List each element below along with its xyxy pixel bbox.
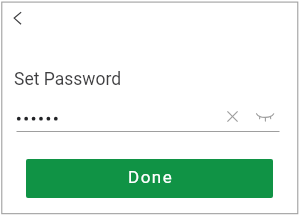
button[interactable]: Done (26, 159, 273, 198)
button[interactable]: Clear password (221, 105, 244, 128)
staticText: Set Password (14, 69, 122, 90)
staticText: Done (128, 167, 174, 187)
button[interactable]: Show password (253, 105, 276, 128)
button[interactable]: Navigate back (5, 6, 30, 31)
